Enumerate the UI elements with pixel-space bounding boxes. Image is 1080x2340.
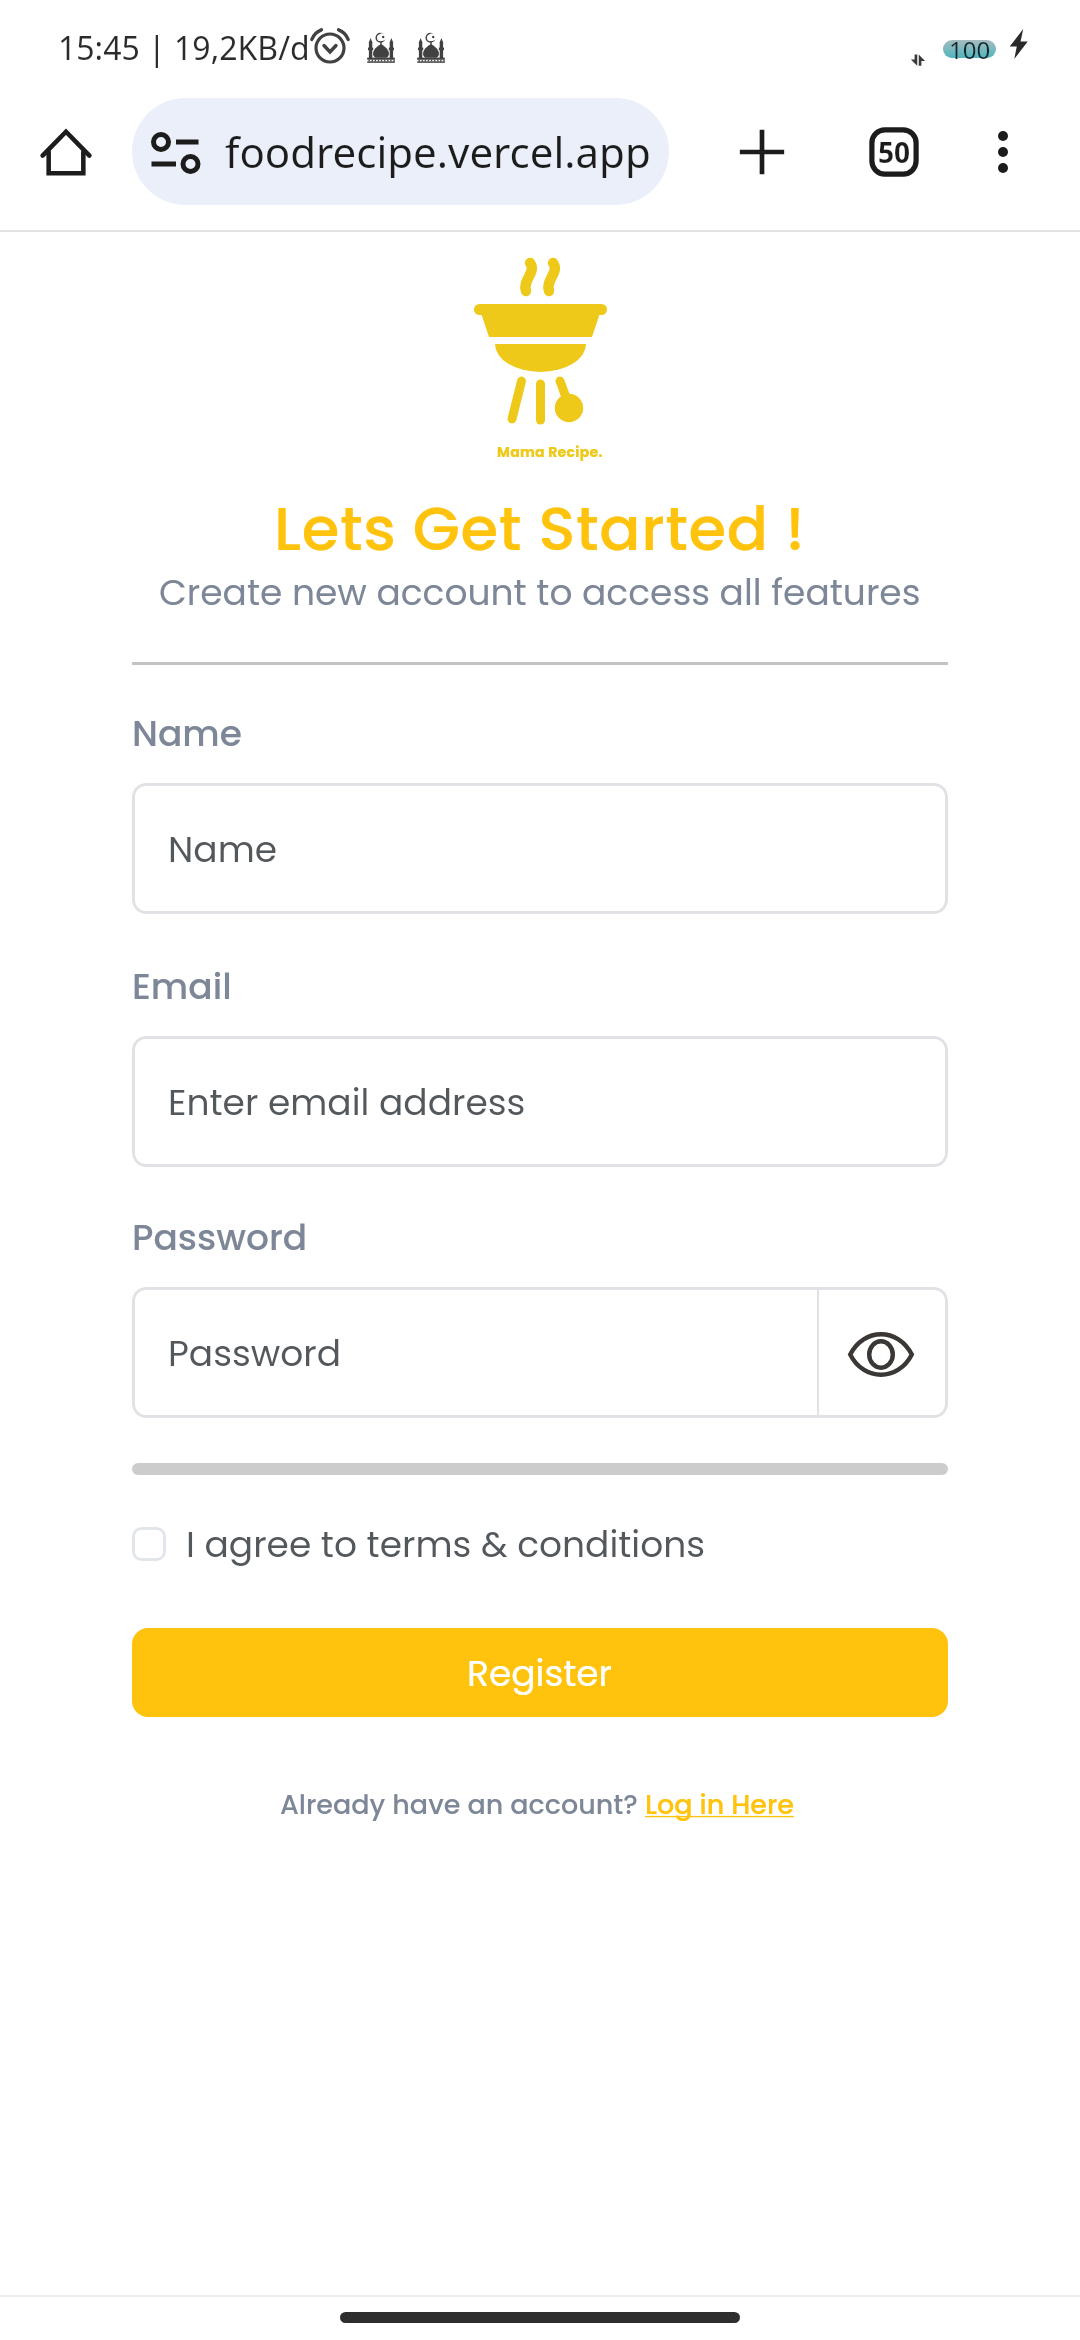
button[interactable]: Password bbox=[132, 1287, 817, 1418]
staticText: 15:45 | 19,2KB/d bbox=[58, 26, 310, 70]
button[interactable]: Home bbox=[29, 116, 103, 190]
staticText: Password bbox=[132, 1212, 308, 1262]
staticText: Name bbox=[168, 824, 278, 874]
staticText: foodrecipe.vercel.app bbox=[225, 123, 651, 180]
staticText: Email bbox=[132, 961, 232, 1011]
staticText: 100 bbox=[949, 33, 991, 61]
button[interactable]: foodrecipe.vercel.app bbox=[132, 98, 669, 205]
button[interactable]: Log in Here bbox=[645, 1786, 794, 1824]
button[interactable]: Name bbox=[132, 783, 948, 914]
staticText: I agree to terms & conditions bbox=[186, 1519, 706, 1569]
staticText: Log in Here bbox=[645, 1786, 794, 1824]
staticText: Name bbox=[132, 708, 242, 758]
staticText: Register bbox=[467, 1648, 613, 1698]
button[interactable]: More options bbox=[969, 118, 1037, 186]
staticText: Enter email address bbox=[168, 1077, 526, 1127]
staticText: Create new account to access all feature… bbox=[159, 567, 921, 617]
staticText: Already have an account? bbox=[280, 1786, 645, 1824]
button[interactable]: Show password bbox=[819, 1287, 948, 1418]
staticText: Password bbox=[168, 1328, 342, 1378]
button[interactable]: New tab bbox=[728, 118, 796, 186]
staticText: Lets Get Started ! bbox=[274, 486, 806, 571]
staticText: Mama Recipe. bbox=[497, 442, 603, 462]
button[interactable]: Register bbox=[132, 1628, 948, 1717]
button[interactable]: I agree to terms & conditions bbox=[132, 1516, 752, 1572]
staticText: 50 bbox=[878, 133, 911, 171]
button[interactable]: Switch tabs, 50 open bbox=[860, 118, 928, 186]
button[interactable]: Enter email address bbox=[132, 1036, 948, 1167]
